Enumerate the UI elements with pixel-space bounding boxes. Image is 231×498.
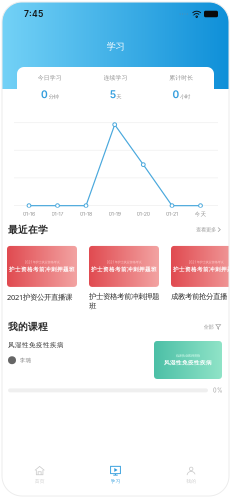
- staticText: 成教考前抢分直播: [171, 292, 227, 301]
- button[interactable]: 2021年护士执业资格考试: [171, 246, 231, 301]
- staticText: 累计时长: [169, 74, 193, 81]
- staticText: 01-20: [137, 211, 150, 217]
- staticText: 李璐: [19, 357, 31, 364]
- button[interactable]: 我的: [153, 459, 229, 491]
- staticText: 0: [172, 88, 179, 101]
- staticText: 01-18: [80, 211, 92, 217]
- button[interactable]: 2021年护士执业资格考试: [7, 246, 77, 302]
- staticText: 天: [116, 93, 121, 100]
- staticText: 2021护资公开直播课: [7, 292, 72, 302]
- staticText: 学习: [110, 478, 120, 484]
- staticText: 护士资格考前冲刺押题班: [173, 266, 231, 273]
- staticText: 首页: [35, 478, 45, 484]
- staticText: 2021年护士执业资格考试: [106, 260, 141, 264]
- staticText: 临床执业医师资格: [176, 354, 200, 358]
- staticText: 风湿性免疫性疾病: [8, 341, 64, 349]
- button[interactable]: 查看更多: [196, 226, 221, 233]
- staticText: 全部: [203, 323, 213, 330]
- staticText: 01-21: [166, 211, 178, 217]
- staticText: 0%: [213, 387, 222, 394]
- staticText: 护士资格考前冲刺押题班: [89, 292, 159, 311]
- staticText: 小时: [180, 93, 190, 100]
- staticText: 我的: [186, 478, 196, 484]
- button[interactable]: 学习: [78, 459, 153, 491]
- staticText: 今日学习: [38, 74, 62, 81]
- button[interactable]: 全部: [203, 323, 221, 330]
- staticText: 分钟: [49, 93, 59, 100]
- button[interactable]: 2021年护士执业资格考试: [89, 246, 159, 311]
- staticText: 护士资格考前冲刺押题班: [9, 266, 75, 273]
- staticText: 学习: [106, 41, 124, 52]
- staticText: 7:45: [24, 9, 43, 19]
- staticText: 2021年护士执业资格考试: [188, 260, 223, 264]
- staticText: 01-16: [23, 211, 35, 217]
- staticText: 01-17: [51, 211, 63, 217]
- staticText: 2021年护士执业资格考试: [24, 260, 59, 264]
- staticText: 连续学习: [103, 74, 127, 81]
- staticText: 我的课程: [8, 321, 48, 333]
- staticText: 5: [110, 88, 116, 101]
- staticText: 0: [41, 88, 48, 101]
- button[interactable]: 首页: [2, 459, 78, 491]
- staticText: 最近在学: [8, 224, 48, 236]
- staticText: 查看更多: [196, 226, 216, 233]
- button[interactable]: 风湿性免疫性疾病: [2, 333, 229, 394]
- staticText: 风湿性免疫性疾病: [164, 359, 212, 366]
- staticText: 01-19: [109, 211, 121, 217]
- staticText: 护士资格考前冲刺押题班: [91, 266, 157, 273]
- staticText: 今天: [194, 211, 206, 218]
